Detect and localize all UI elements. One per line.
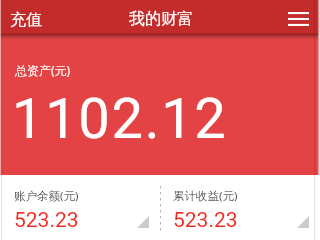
staticText: 523.23 [14,208,79,233]
staticText: 1102.12 [12,86,228,152]
staticText: 我的财富 [129,9,193,29]
staticText: 总资产(元) [15,62,71,78]
staticText: 账户余额(元) [14,188,79,204]
button[interactable]: Menu [277,6,320,32]
staticText: 累计收益(元) [173,188,238,204]
staticText: 523.23 [173,208,238,233]
button[interactable]: 累计收益(元) [160,175,320,240]
button[interactable]: 账户余额(元) [0,175,160,240]
button[interactable]: 充值 [0,4,52,34]
staticText: 充值 [10,10,42,30]
